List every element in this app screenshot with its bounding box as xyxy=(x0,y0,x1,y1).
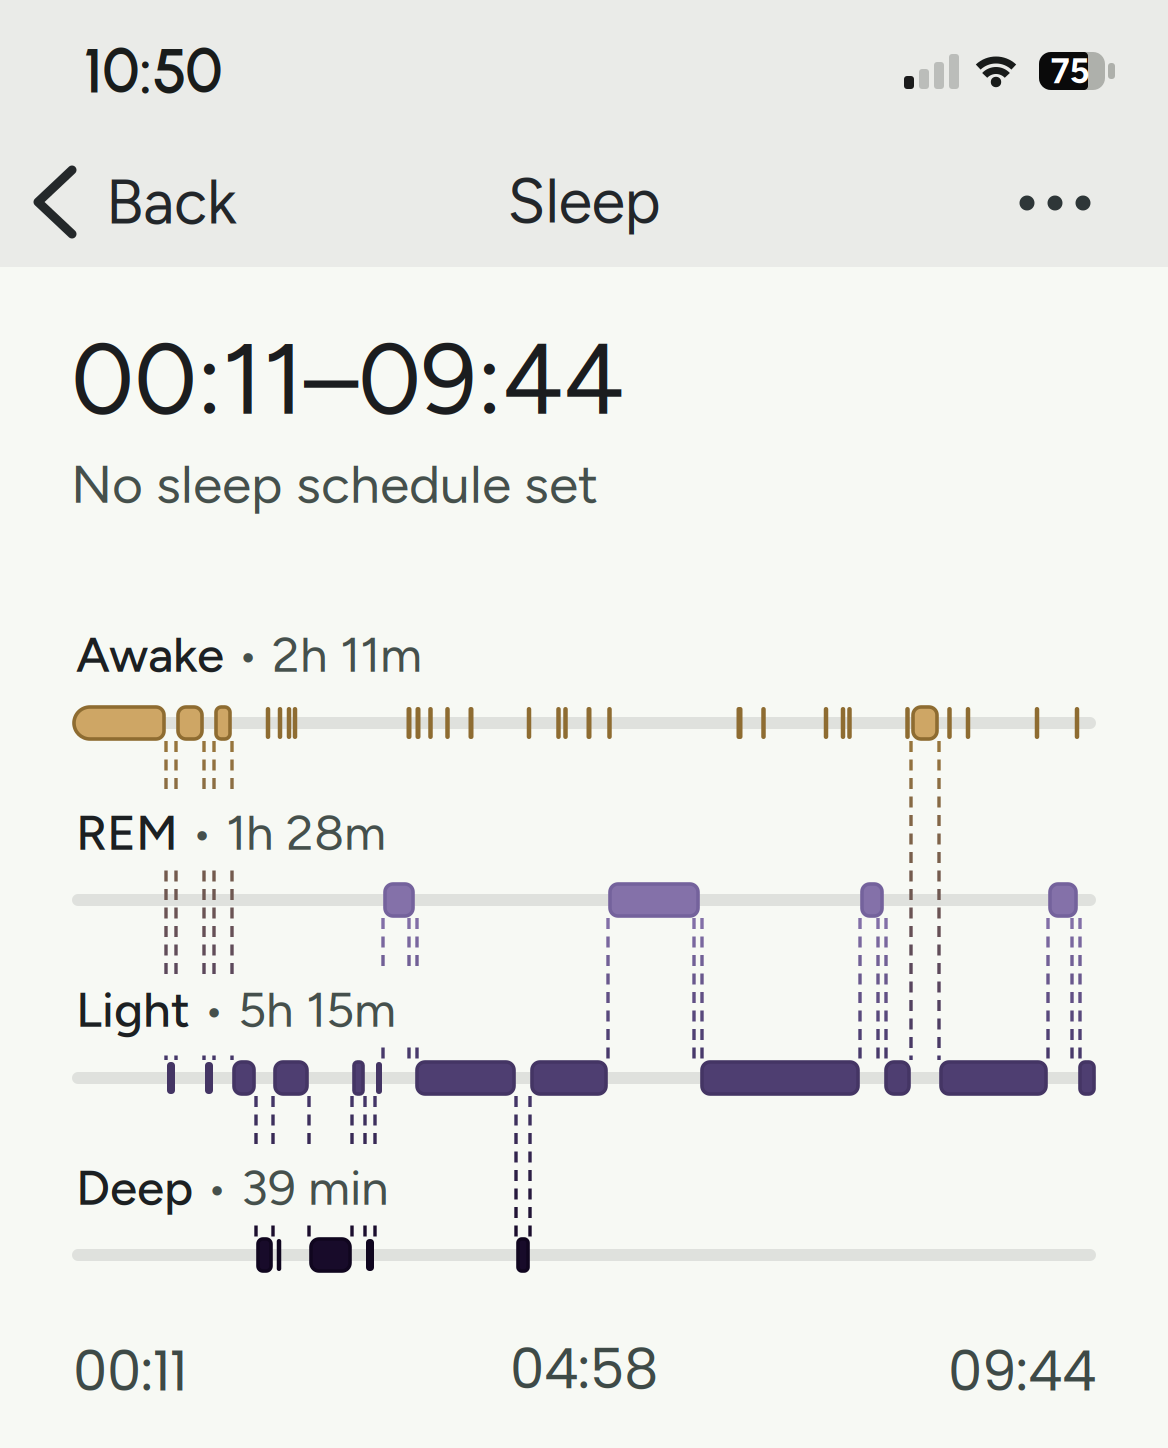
button[interactable]: Back xyxy=(0,0,237,239)
staticText: No sleep schedule set xyxy=(71,452,598,516)
staticText: Back xyxy=(106,165,237,239)
staticText: • xyxy=(191,805,213,860)
staticText: 39 min xyxy=(241,1158,389,1217)
staticText: Light xyxy=(76,980,190,1039)
button[interactable]: More options xyxy=(0,0,1092,212)
staticText: Awake xyxy=(76,625,224,684)
staticText: 1h 28m xyxy=(226,803,386,862)
staticText: Deep xyxy=(76,1158,193,1217)
staticText: Sleep xyxy=(507,164,660,238)
staticText: 5h 15m xyxy=(238,980,396,1039)
staticText: REM xyxy=(76,803,178,862)
staticText: 10:50 xyxy=(83,34,222,108)
staticText: 04:58 xyxy=(510,1331,658,1407)
staticText: • xyxy=(237,627,259,682)
staticText: 00:11–09:44 xyxy=(71,320,624,438)
staticText: 2h 11m xyxy=(272,625,422,684)
staticText: 09:44 xyxy=(948,1333,1096,1409)
staticText: 00:11 xyxy=(73,1333,187,1409)
staticText: • xyxy=(206,1160,228,1215)
staticText: • xyxy=(203,982,225,1037)
staticText: 75 xyxy=(1050,50,1089,92)
